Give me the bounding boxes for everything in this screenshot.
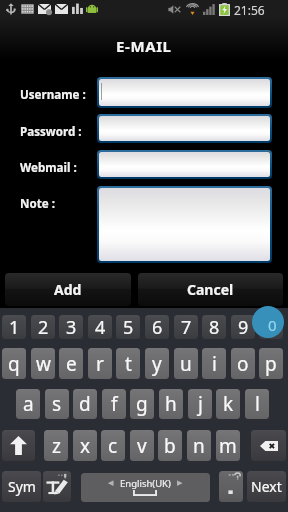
staticText: ▶ (177, 479, 183, 487)
staticText: l (255, 391, 260, 417)
button[interactable]: j (188, 389, 212, 419)
staticText: 5 (123, 315, 134, 339)
staticText: p (265, 351, 277, 377)
staticText: j (198, 391, 203, 417)
staticText: 9 (238, 315, 249, 339)
button[interactable]: 7 (174, 315, 198, 339)
button[interactable]: p (259, 348, 283, 379)
staticText: a (23, 391, 34, 417)
button[interactable]: y (145, 348, 169, 379)
staticText: English(UK) (120, 477, 171, 489)
button[interactable]: n (187, 430, 211, 461)
button[interactable]: b (158, 430, 182, 461)
staticText: g (136, 391, 148, 417)
staticText: Add (54, 280, 82, 299)
staticText: 2 (38, 315, 49, 339)
staticText: 7 (181, 315, 192, 339)
staticText: t (125, 351, 132, 377)
staticText: 6 (152, 315, 163, 339)
button[interactable]: k (216, 389, 240, 419)
button[interactable]: Next (247, 471, 286, 502)
staticText: Password : (20, 124, 105, 138)
button[interactable]: h (159, 389, 183, 419)
button[interactable]: Sym (2, 471, 41, 502)
button[interactable]: 5 (116, 315, 140, 339)
staticText: E-MAIL (116, 36, 172, 54)
button[interactable]: 1 (2, 315, 26, 339)
staticText: 0 (268, 315, 277, 335)
button[interactable]: g (130, 389, 154, 419)
button[interactable]: i (202, 348, 226, 379)
button[interactable]: q (2, 348, 26, 379)
staticText: q (8, 351, 20, 377)
button[interactable]: v (130, 430, 154, 461)
button[interactable]: r (88, 348, 112, 379)
staticText: v (137, 433, 147, 459)
button[interactable]: d (73, 389, 97, 419)
button[interactable]: l (245, 389, 269, 419)
staticText: b (164, 433, 176, 459)
button[interactable]: e (59, 348, 83, 379)
button[interactable]: 8 (202, 315, 226, 339)
button[interactable]: 3 (59, 315, 83, 339)
button[interactable]: f (102, 389, 126, 419)
staticText: Next (251, 477, 282, 496)
staticText: Webmail : (20, 160, 105, 174)
button[interactable]: Shift (2, 430, 35, 461)
staticText: d (79, 391, 91, 417)
staticText: i (212, 351, 217, 377)
button[interactable]: x (73, 430, 97, 461)
staticText: z (52, 433, 61, 459)
button[interactable]: 2 (31, 315, 55, 339)
button[interactable]: t (116, 348, 140, 379)
button[interactable]: w (31, 348, 55, 379)
staticText: ◀ (108, 479, 114, 487)
staticText: 4 (95, 315, 106, 339)
staticText: e (66, 351, 77, 377)
button[interactable]: 0 (252, 306, 284, 338)
button[interactable] (99, 152, 270, 177)
button[interactable]: Cancel (138, 273, 283, 306)
staticText: k (223, 391, 234, 417)
staticText: u (180, 351, 192, 377)
button[interactable]: Period (219, 471, 243, 502)
button[interactable]: c (101, 430, 125, 461)
staticText: m (219, 433, 237, 459)
staticText: 1 (9, 315, 20, 339)
staticText: w (36, 351, 51, 377)
staticText: 3 (66, 315, 77, 339)
button[interactable]: o (231, 348, 255, 379)
button[interactable]: a (16, 389, 40, 419)
button[interactable]: u (174, 348, 198, 379)
button[interactable]: Backspace (251, 430, 286, 461)
button[interactable]: 4 (88, 315, 112, 339)
staticText: Username : (20, 87, 105, 101)
staticText: f (111, 391, 118, 417)
staticText: Sym (8, 477, 36, 496)
staticText: 21:56 (234, 2, 286, 17)
button[interactable]: Space, English (UK) (81, 473, 210, 502)
button[interactable] (99, 116, 270, 141)
button[interactable]: 0 (259, 315, 283, 339)
button[interactable] (99, 79, 270, 106)
staticText: 8 (209, 315, 220, 339)
staticText: r (96, 351, 104, 377)
staticText: Cancel (187, 280, 234, 299)
button[interactable]: s (45, 389, 69, 419)
staticText: x (80, 433, 91, 459)
staticText: s (52, 391, 62, 417)
staticText: Note : (20, 196, 105, 210)
staticText: c (108, 433, 118, 459)
staticText: o (237, 351, 249, 377)
button[interactable]: 6 (145, 315, 169, 339)
button[interactable]: m (216, 430, 240, 461)
staticText: h (165, 391, 177, 417)
button[interactable]: Add (5, 273, 131, 306)
staticText: n (193, 433, 205, 459)
button[interactable]: Change input method (43, 471, 71, 502)
button[interactable]: 9 (231, 315, 255, 339)
button[interactable] (99, 188, 270, 261)
button[interactable]: z (44, 430, 68, 461)
staticText: y (152, 351, 162, 377)
staticText: 0 (266, 315, 277, 339)
